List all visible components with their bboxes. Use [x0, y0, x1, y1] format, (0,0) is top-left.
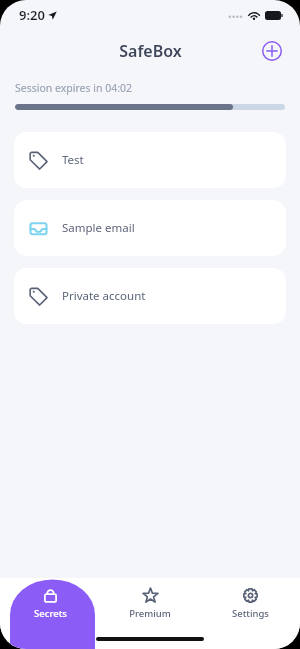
- staticText: Session expires in 04:02: [15, 81, 133, 95]
- staticText: Test: [62, 152, 84, 168]
- button[interactable]: Settings: [200, 578, 300, 649]
- staticText: SafeBox: [119, 40, 182, 62]
- staticText: 9:20: [19, 6, 45, 24]
- staticText: Settings: [232, 607, 269, 620]
- button[interactable]: Test: [14, 132, 286, 188]
- button[interactable]: Sample email: [14, 200, 286, 256]
- staticText: Private account: [62, 288, 146, 304]
- button[interactable]: Private account: [14, 268, 286, 324]
- staticText: Sample email: [62, 220, 135, 236]
- button[interactable]: Premium: [100, 578, 200, 649]
- button[interactable]: Secrets: [0, 578, 100, 649]
- staticText: Secrets: [34, 607, 67, 620]
- staticText: Premium: [129, 607, 171, 620]
- button[interactable]: Add secret: [257, 36, 287, 66]
